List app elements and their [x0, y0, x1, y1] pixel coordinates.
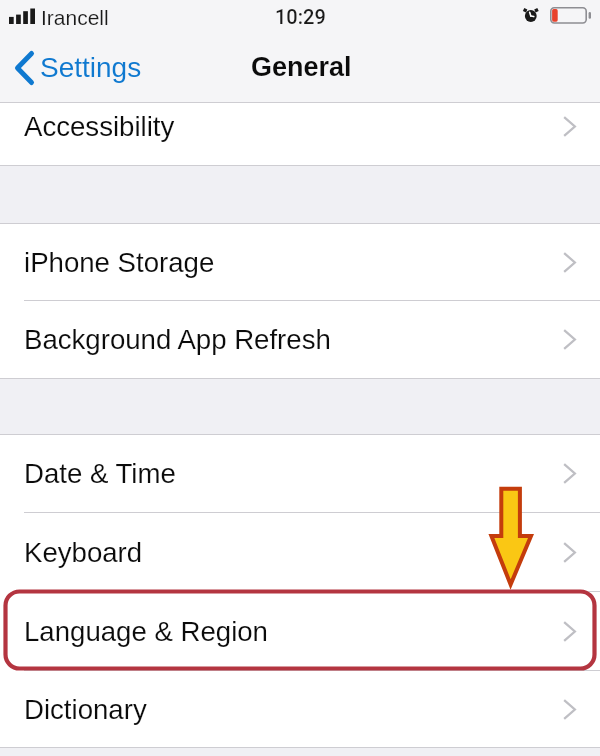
staticText: Settings [40, 52, 142, 83]
other: Cellular signal [9, 8, 36, 24]
button[interactable]: Dictionary [0, 671, 600, 747]
button[interactable]: Accessibility [0, 103, 600, 165]
button[interactable]: Keyboard [0, 513, 600, 591]
button[interactable]: Date & Time [0, 435, 600, 512]
button[interactable]: Settings [0, 43, 152, 93]
staticText: Dictionary [24, 694, 147, 725]
button[interactable]: Language & Region [0, 592, 600, 670]
staticText: Keyboard [24, 537, 143, 568]
staticText: Background App Refresh [24, 324, 331, 355]
button[interactable]: Background App Refresh [0, 301, 600, 378]
staticText: 10:29 [275, 5, 326, 28]
staticText: Accessibility [24, 111, 175, 142]
staticText: Irancell [41, 6, 109, 29]
other: Battery [550, 7, 592, 25]
staticText: iPhone Storage [24, 247, 215, 278]
other: Alarm [521, 4, 541, 28]
staticText: General [251, 52, 352, 82]
staticText: Date & Time [24, 458, 176, 489]
staticText: Language & Region [24, 616, 268, 647]
button[interactable]: iPhone Storage [0, 224, 600, 300]
